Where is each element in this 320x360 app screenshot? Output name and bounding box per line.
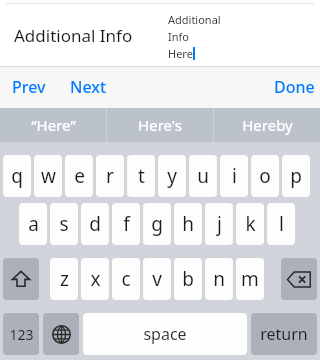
staticText: return	[260, 323, 308, 345]
button[interactable]: Change keyboard	[43, 313, 79, 355]
button[interactable]: p	[282, 155, 310, 197]
staticText: g	[151, 211, 163, 237]
button[interactable]: y	[158, 155, 186, 197]
button[interactable]: Here's	[107, 108, 213, 142]
staticText: t	[138, 163, 145, 189]
staticText: Prev	[12, 76, 46, 98]
button[interactable]: f	[112, 203, 140, 245]
staticText: k	[245, 211, 256, 237]
button[interactable]: h	[174, 203, 202, 245]
button[interactable]: n	[205, 258, 233, 300]
staticText: Here	[168, 46, 193, 61]
staticText: Additional	[168, 12, 221, 27]
staticText: w	[41, 163, 56, 189]
staticText: p	[290, 163, 302, 189]
button[interactable]: Done	[274, 66, 315, 108]
staticText: space	[143, 323, 187, 345]
staticText: u	[197, 163, 209, 189]
button[interactable]: r	[96, 155, 124, 197]
staticText: x	[90, 266, 101, 292]
button[interactable]: i	[220, 155, 248, 197]
button[interactable]: Shift	[3, 258, 39, 300]
staticText: c	[121, 266, 131, 292]
staticText: d	[89, 211, 101, 237]
button[interactable]: d	[81, 203, 109, 245]
staticText: Info	[168, 29, 189, 44]
staticText: e	[74, 163, 85, 189]
staticText: n	[213, 266, 225, 292]
button[interactable]: u	[189, 155, 217, 197]
button[interactable]: o	[251, 155, 279, 197]
staticText: 123	[9, 325, 34, 344]
staticText: Additional Info	[14, 24, 133, 47]
staticText: b	[182, 266, 194, 292]
staticText: i	[232, 163, 237, 189]
button[interactable]: b	[174, 258, 202, 300]
staticText: Next	[70, 76, 107, 98]
staticText: Done	[274, 76, 315, 98]
button[interactable]: Prev	[12, 66, 46, 108]
button[interactable]: c	[112, 258, 140, 300]
button[interactable]: q	[3, 155, 31, 197]
button[interactable]: Next	[70, 66, 107, 108]
button[interactable]: v	[143, 258, 171, 300]
button[interactable]: 123	[3, 313, 39, 355]
staticText: s	[59, 211, 69, 237]
button[interactable]: w	[34, 155, 62, 197]
button[interactable]: g	[143, 203, 171, 245]
staticText: r	[106, 163, 114, 189]
button[interactable]: Delete	[281, 258, 317, 300]
staticText: Here's	[138, 115, 182, 135]
button[interactable]: a	[19, 203, 47, 245]
button[interactable]: k	[236, 203, 264, 245]
staticText: f	[123, 211, 130, 237]
staticText: Hereby	[242, 115, 293, 135]
button[interactable]: space	[83, 313, 247, 355]
button[interactable]: j	[205, 203, 233, 245]
staticText: l	[279, 211, 284, 237]
staticText: a	[28, 211, 39, 237]
staticText: “Here”	[31, 115, 76, 135]
button[interactable]: Additional Info	[14, 24, 133, 47]
staticText: v	[152, 266, 162, 292]
staticText: y	[167, 163, 177, 189]
staticText: h	[182, 211, 194, 237]
button[interactable]: Hereby	[214, 108, 320, 142]
staticText: q	[11, 163, 23, 189]
staticText: j	[217, 211, 222, 237]
staticText: o	[259, 163, 271, 189]
button[interactable]: m	[236, 258, 264, 300]
button[interactable]: l	[267, 203, 295, 245]
button[interactable]: return	[251, 313, 317, 355]
button[interactable]: e	[65, 155, 93, 197]
staticText: z	[60, 266, 69, 292]
button[interactable]: z	[50, 258, 78, 300]
button[interactable]: s	[50, 203, 78, 245]
button[interactable]: x	[81, 258, 109, 300]
button[interactable]: “Here”	[0, 108, 106, 142]
button[interactable]: t	[127, 155, 155, 197]
staticText: m	[241, 266, 259, 292]
